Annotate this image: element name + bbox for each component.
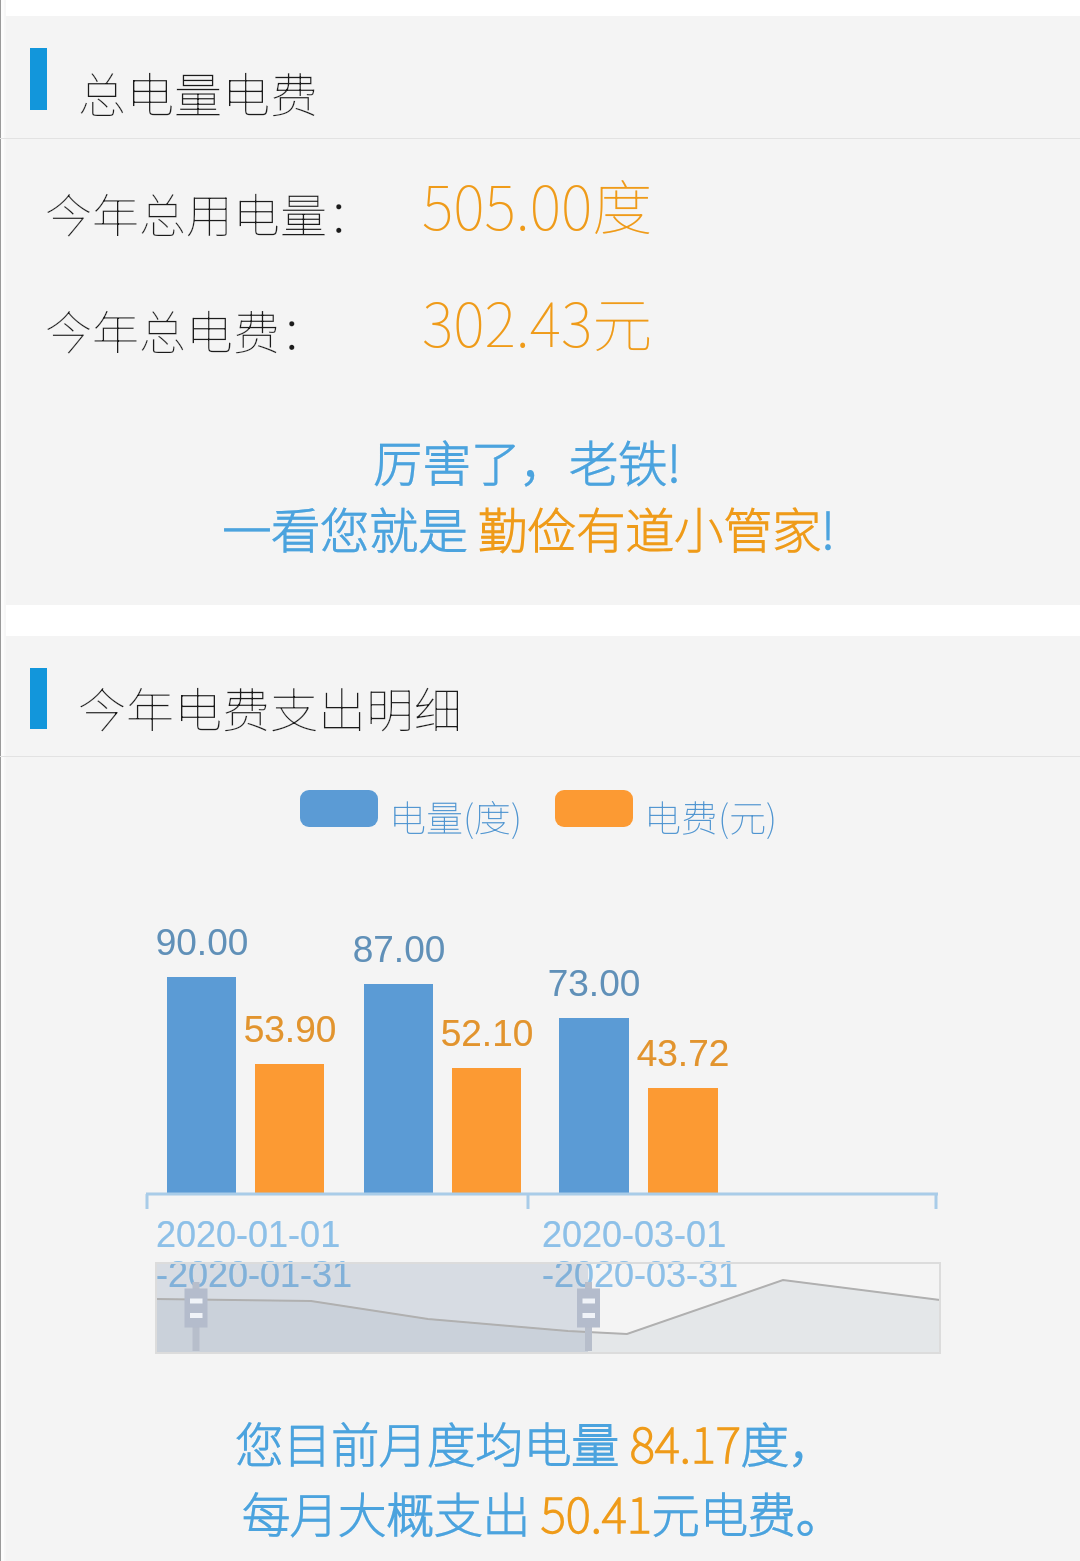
staticText: 总电量电费 [78,57,319,127]
staticText: 电量(度) [389,789,523,843]
staticText: 今年电费支出明细 [78,672,463,742]
staticText: 一看您就是 勤俭有道小管家! [222,492,835,563]
button[interactable]: Range start handle [184,1282,208,1352]
staticText: 今年总用电量： [45,178,374,246]
button[interactable]: Range end handle [577,1282,601,1352]
button[interactable]: 电费(元) [555,789,778,843]
staticText: 52.10 [367,1013,607,1054]
staticText: 今年总电费： [45,295,327,363]
staticText: 73.00 [474,963,714,1004]
button[interactable]: 电量(度) [300,789,523,843]
staticText: 厉害了，老铁! [373,425,681,496]
staticText: 505.00度 [422,160,653,247]
staticText: 2020-03-01 -2020-03-31 [542,1214,739,1295]
button[interactable]: 总电量电费 [0,16,1080,139]
staticText: 87.00 [279,929,519,970]
staticText: 电费(元) [644,789,778,843]
staticText: 302.43元 [422,277,653,364]
staticText: 90.00 [82,922,322,963]
staticText: 您目前月度均电量 84.17度， [235,1407,837,1477]
staticText: 43.72 [563,1033,803,1074]
button[interactable]: 今年电费支出明细 [0,636,1080,757]
staticText: 每月大概支出 50.41元电费。 [242,1477,844,1547]
staticText: 2020-01-01 -2020-01-31 [156,1214,353,1295]
staticText: 53.90 [170,1009,410,1050]
